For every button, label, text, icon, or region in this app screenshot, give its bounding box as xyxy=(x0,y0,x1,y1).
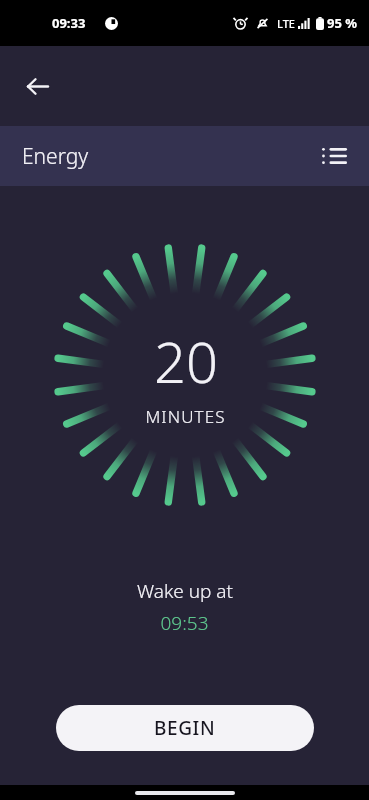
button[interactable]: Back xyxy=(14,63,60,109)
button[interactable]: Energy xyxy=(0,126,369,186)
staticText: Wake up at xyxy=(137,578,233,604)
button[interactable]: BEGIN xyxy=(56,705,314,751)
button[interactable]: Open list xyxy=(313,135,355,177)
staticText: LTE xyxy=(277,16,295,31)
staticText: BEGIN xyxy=(154,715,216,741)
staticText: 95 % xyxy=(327,14,357,32)
staticText: MINUTES xyxy=(145,405,226,428)
staticText: 20 xyxy=(154,323,218,399)
staticText: 09:53 xyxy=(160,610,209,636)
staticText: 09:33 xyxy=(52,14,86,32)
staticText: Energy xyxy=(22,142,89,171)
